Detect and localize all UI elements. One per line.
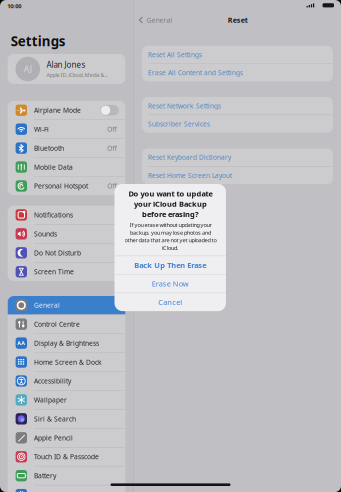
- button[interactable]: Cancel: [114, 293, 226, 311]
- staticText: Mobile Data: [34, 162, 73, 172]
- staticText: Reset Keyboard Dictionary: [148, 153, 231, 162]
- staticText: Touch ID & Passcode: [34, 452, 99, 461]
- staticText: Personal Hotspot: [34, 181, 88, 190]
- staticText: Erase All Content and Settings: [148, 68, 243, 77]
- button[interactable]: Bluetooth: [8, 139, 125, 157]
- staticText: AJ: [24, 63, 32, 75]
- staticText: AA: [17, 339, 25, 347]
- staticText: Subscriber Services: [148, 119, 210, 128]
- button[interactable]: Reset All Settings: [142, 46, 333, 63]
- button[interactable]: Do Not Disturb: [8, 244, 125, 262]
- button[interactable]: Sounds: [8, 225, 125, 243]
- staticText: Erase Now: [152, 278, 189, 289]
- staticText: Off: [107, 144, 117, 153]
- staticText: Home Screen & Dock: [34, 357, 102, 367]
- staticText: Bluetooth: [34, 144, 64, 153]
- staticText: Cancel: [158, 297, 182, 307]
- staticText: Screen Time: [34, 267, 74, 276]
- staticText: Reset Network Settings: [148, 101, 221, 110]
- button[interactable]: Notifications: [8, 206, 125, 224]
- button[interactable]: Control Centre: [8, 315, 125, 333]
- staticText: Off: [107, 181, 117, 190]
- button[interactable]: Touch ID & Passcode: [8, 447, 125, 466]
- staticText: Reset All Settings: [148, 50, 202, 59]
- button[interactable]: Battery: [8, 466, 125, 485]
- button[interactable]: Apple Pencil: [8, 429, 125, 447]
- staticText: General: [34, 301, 60, 310]
- staticText: Back Up Then Erase: [134, 260, 206, 270]
- button[interactable]: General: [139, 15, 172, 25]
- staticText: Do Not Disturb: [34, 248, 81, 257]
- button[interactable]: Subscriber Services: [142, 115, 333, 133]
- button[interactable]: Wi-Fi: [8, 120, 125, 138]
- staticText: Apple ID, iCloud, Media &...: [46, 71, 107, 79]
- staticText: Battery: [34, 471, 56, 480]
- button[interactable]: Reset Keyboard Dictionary: [142, 148, 333, 166]
- button[interactable]: Erase All Content and Settings: [142, 64, 333, 81]
- staticText: Do you want to update your iCloud Backup…: [128, 189, 212, 219]
- staticText: Sounds: [34, 229, 57, 238]
- button[interactable]: Wallpaper: [8, 391, 125, 409]
- staticText: Settings: [11, 32, 66, 50]
- staticText: Control Centre: [34, 320, 80, 329]
- staticText: Reset: [228, 15, 248, 25]
- staticText: Off: [107, 125, 117, 134]
- button[interactable]: General: [8, 296, 125, 314]
- staticText: If you erase without updating your backu…: [124, 221, 216, 252]
- button[interactable]: Accessibility: [8, 372, 125, 390]
- button[interactable]: Airplane Mode: [8, 101, 125, 119]
- button[interactable]: Erase Now: [114, 275, 226, 293]
- button[interactable]: AA: [8, 334, 125, 352]
- staticText: 10:00: [7, 2, 21, 10]
- staticText: Reset Home Screen Layout: [148, 171, 232, 180]
- staticText: Wi-Fi: [34, 125, 49, 134]
- button[interactable]: Privacy: [8, 485, 125, 492]
- button[interactable]: Reset Network Settings: [142, 97, 333, 115]
- staticText: Airplane Mode: [34, 106, 81, 115]
- button[interactable]: Mobile Data: [8, 158, 125, 176]
- button[interactable]: Home Screen & Dock: [8, 353, 125, 371]
- staticText: Apple Pencil: [34, 433, 73, 442]
- staticText: Alan Jones: [46, 59, 85, 70]
- staticText: Notifications: [34, 210, 73, 219]
- button[interactable]: Screen Time: [8, 262, 125, 281]
- button[interactable]: Personal Hotspot: [8, 177, 125, 195]
- staticText: Display & Brightness: [34, 339, 99, 348]
- staticText: Accessibility: [34, 376, 71, 385]
- staticText: General: [146, 15, 172, 25]
- button[interactable]: AJ: [8, 54, 125, 84]
- button[interactable]: Back Up Then Erase: [114, 256, 226, 274]
- button[interactable]: Siri & Search: [8, 410, 125, 428]
- button[interactable]: Reset Home Screen Layout: [142, 166, 333, 184]
- staticText: Siri & Search: [34, 414, 76, 423]
- staticText: Wallpaper: [34, 395, 67, 404]
